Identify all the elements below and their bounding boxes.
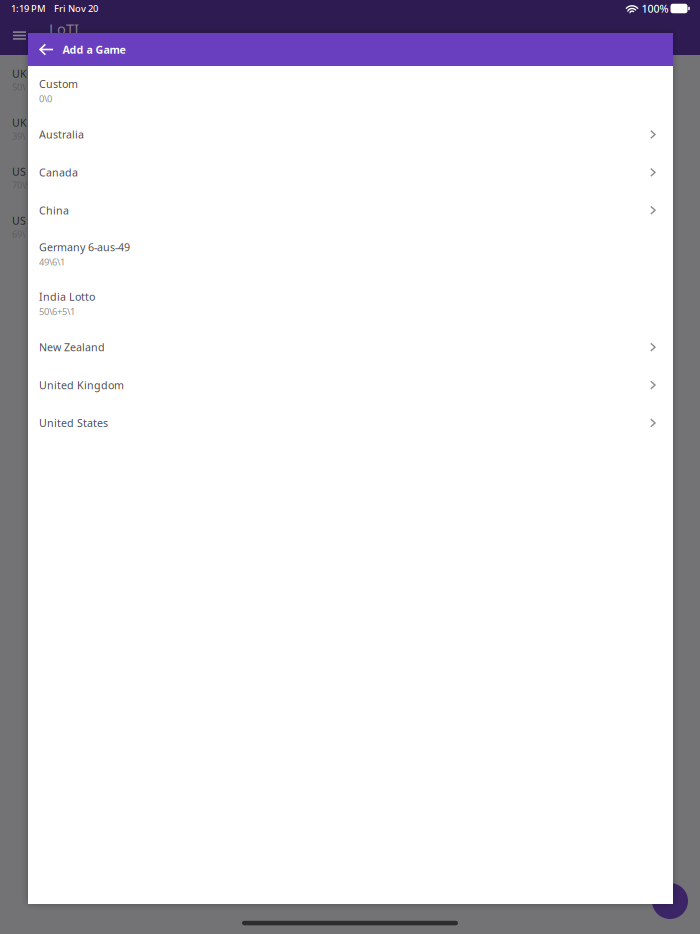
staticText: US	[12, 164, 29, 179]
staticText: Custom	[39, 77, 78, 91]
button[interactable]: Add	[652, 883, 688, 919]
staticText: Germany 6-aus-49	[39, 240, 130, 254]
button[interactable]: Germany 6-aus-49	[28, 229, 673, 279]
staticText: Add a Game	[62, 42, 125, 57]
staticText: Canada	[39, 165, 78, 179]
staticText: United States	[39, 416, 108, 430]
button[interactable]: India Lotto	[28, 279, 673, 328]
staticText: New Zealand	[39, 340, 105, 354]
staticText: 50\	[12, 81, 25, 93]
staticText: 49\6\1	[39, 256, 65, 268]
button[interactable]: Menu	[13, 22, 39, 48]
staticText: 100%	[641, 1, 668, 16]
button[interactable]: Australia	[28, 115, 673, 153]
staticText: UK	[12, 66, 30, 81]
staticText: 69\	[12, 228, 25, 240]
staticText: 1:19 PM	[11, 2, 46, 15]
button[interactable]: New Zealand	[28, 328, 673, 366]
staticText: Australia	[39, 127, 84, 142]
staticText: United Kingdom	[39, 378, 124, 392]
staticText: 0\0	[39, 92, 52, 105]
staticText: 50\6+5\1	[39, 305, 75, 317]
button[interactable]: Custom	[28, 66, 673, 115]
staticText: India Lotto	[39, 289, 95, 304]
button[interactable]: Back	[35, 38, 57, 60]
staticText: Fri Nov 20	[54, 2, 98, 15]
button[interactable]: United Kingdom	[28, 366, 673, 404]
staticText: 70\5	[12, 179, 30, 191]
button[interactable]: United States	[28, 404, 673, 442]
staticText: US	[12, 213, 29, 228]
staticText: 39\	[12, 130, 25, 142]
button[interactable]: Canada	[28, 153, 673, 191]
staticText: LoTI	[49, 19, 79, 38]
button[interactable]: China	[28, 191, 673, 229]
staticText: China	[39, 203, 69, 217]
staticText: UK	[12, 115, 30, 130]
